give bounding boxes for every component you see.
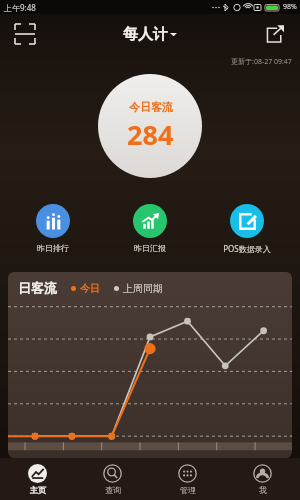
staticText: 每人计 bbox=[123, 25, 168, 44]
staticText: 284 bbox=[127, 116, 174, 153]
button[interactable]: 今日客流 bbox=[98, 74, 202, 178]
staticText: 上周同期 bbox=[123, 282, 163, 295]
staticText: 昨日排行 bbox=[37, 243, 69, 253]
button[interactable]: 日客流 bbox=[8, 272, 292, 458]
staticText: POS数据录入 bbox=[223, 243, 271, 254]
staticText: 今日客流 bbox=[129, 100, 173, 114]
button[interactable]: 分享 bbox=[258, 17, 292, 51]
staticText: 昨日汇报 bbox=[134, 243, 166, 253]
button[interactable]: 昨日排行 bbox=[9, 202, 97, 255]
button[interactable]: 主页 bbox=[0, 458, 75, 500]
button[interactable]: 管理 bbox=[150, 458, 225, 500]
button[interactable]: 查询 bbox=[75, 458, 150, 500]
staticText: 上午9:48 bbox=[4, 2, 36, 13]
button[interactable]: 昨日汇报 bbox=[106, 202, 194, 255]
staticText: 更新于:08-27 09:47 bbox=[231, 57, 292, 67]
button[interactable]: 扫一扫 bbox=[8, 17, 42, 51]
staticText: 主页 bbox=[30, 485, 46, 495]
staticText: 管理 bbox=[180, 485, 196, 495]
staticText: 查询 bbox=[105, 485, 121, 495]
staticText: 我 bbox=[259, 485, 267, 495]
staticText: 98% bbox=[283, 2, 297, 12]
staticText: 今日 bbox=[80, 282, 100, 295]
button[interactable]: 每人计 bbox=[123, 25, 177, 44]
button[interactable]: POS数据录入 bbox=[203, 202, 291, 256]
button[interactable]: 我 bbox=[225, 458, 300, 500]
staticText: 日客流 bbox=[18, 280, 57, 296]
